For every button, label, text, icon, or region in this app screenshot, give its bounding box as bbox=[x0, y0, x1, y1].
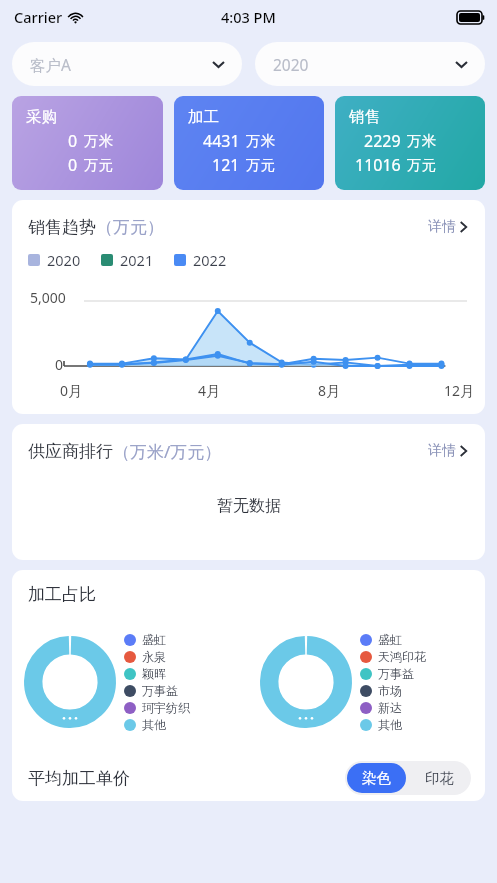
button[interactable]: 加工 bbox=[174, 96, 324, 190]
staticText: 2020 bbox=[273, 54, 309, 75]
staticText: 加工占比 bbox=[28, 584, 96, 605]
staticText: 0 bbox=[68, 130, 78, 152]
staticText: 4431 bbox=[203, 130, 240, 152]
staticText: 5,000 bbox=[30, 288, 66, 307]
staticText: 0 bbox=[55, 355, 64, 374]
button[interactable]: 客户A bbox=[12, 42, 242, 86]
staticText: 4:03 PM bbox=[221, 7, 276, 27]
button[interactable]: 采购 bbox=[12, 96, 163, 190]
staticText: 0 bbox=[68, 154, 78, 176]
staticText: 供应商排行 bbox=[28, 441, 113, 462]
staticText: 121 bbox=[212, 154, 240, 176]
staticText: （万米/万元） bbox=[113, 440, 222, 463]
staticText: 2021 bbox=[120, 250, 154, 270]
staticText: 市场 bbox=[378, 683, 402, 698]
staticText: 详情 bbox=[428, 218, 456, 236]
staticText: 销售趋势 bbox=[28, 217, 96, 238]
button[interactable]: 2020 bbox=[255, 42, 485, 86]
staticText: 万元 bbox=[407, 156, 436, 174]
button[interactable]: 销售 bbox=[335, 96, 485, 190]
button[interactable]: 详情 bbox=[424, 438, 471, 464]
staticText: 11016 bbox=[355, 154, 401, 176]
staticText: 万事益 bbox=[378, 666, 414, 681]
staticText: 万元 bbox=[84, 156, 113, 174]
staticText: 万米 bbox=[407, 132, 436, 150]
staticText: 采购 bbox=[26, 107, 57, 127]
staticText: 永泉 bbox=[142, 649, 166, 664]
staticText: 详情 bbox=[428, 442, 456, 460]
staticText: 加工 bbox=[188, 107, 219, 127]
staticText: 盛虹 bbox=[142, 632, 166, 647]
staticText: 染色 bbox=[362, 769, 391, 787]
staticText: 销售 bbox=[349, 107, 380, 127]
staticText: 天鸿印花 bbox=[378, 649, 426, 664]
staticText: 其他 bbox=[378, 717, 402, 732]
staticText: 2020 bbox=[47, 250, 81, 270]
staticText: 万米 bbox=[246, 132, 275, 150]
staticText: 万事益 bbox=[142, 683, 178, 698]
button[interactable]: 染色 bbox=[347, 763, 406, 793]
staticText: （万元） bbox=[96, 217, 164, 238]
staticText: 万米 bbox=[84, 132, 113, 150]
staticText: 8月 bbox=[318, 381, 341, 400]
staticText: 2229 bbox=[364, 130, 401, 152]
staticText: 平均加工单价 bbox=[28, 768, 130, 789]
staticText: 12月 bbox=[444, 381, 475, 400]
staticText: Carrier bbox=[14, 7, 63, 27]
staticText: 印花 bbox=[425, 769, 454, 787]
staticText: 0月 bbox=[60, 381, 83, 400]
staticText: 其他 bbox=[142, 717, 166, 732]
staticText: 暂无数据 bbox=[217, 496, 281, 516]
staticText: 珂宇纺织 bbox=[142, 700, 190, 715]
button[interactable]: 印花 bbox=[408, 761, 471, 795]
staticText: 新达 bbox=[378, 700, 402, 715]
staticText: 万元 bbox=[246, 156, 275, 174]
staticText: 颖晖 bbox=[142, 666, 166, 681]
button[interactable]: 详情 bbox=[424, 214, 471, 240]
staticText: 4月 bbox=[198, 381, 221, 400]
staticText: 客户A bbox=[30, 54, 71, 75]
staticText: 盛虹 bbox=[378, 632, 402, 647]
staticText: 2022 bbox=[193, 250, 227, 270]
